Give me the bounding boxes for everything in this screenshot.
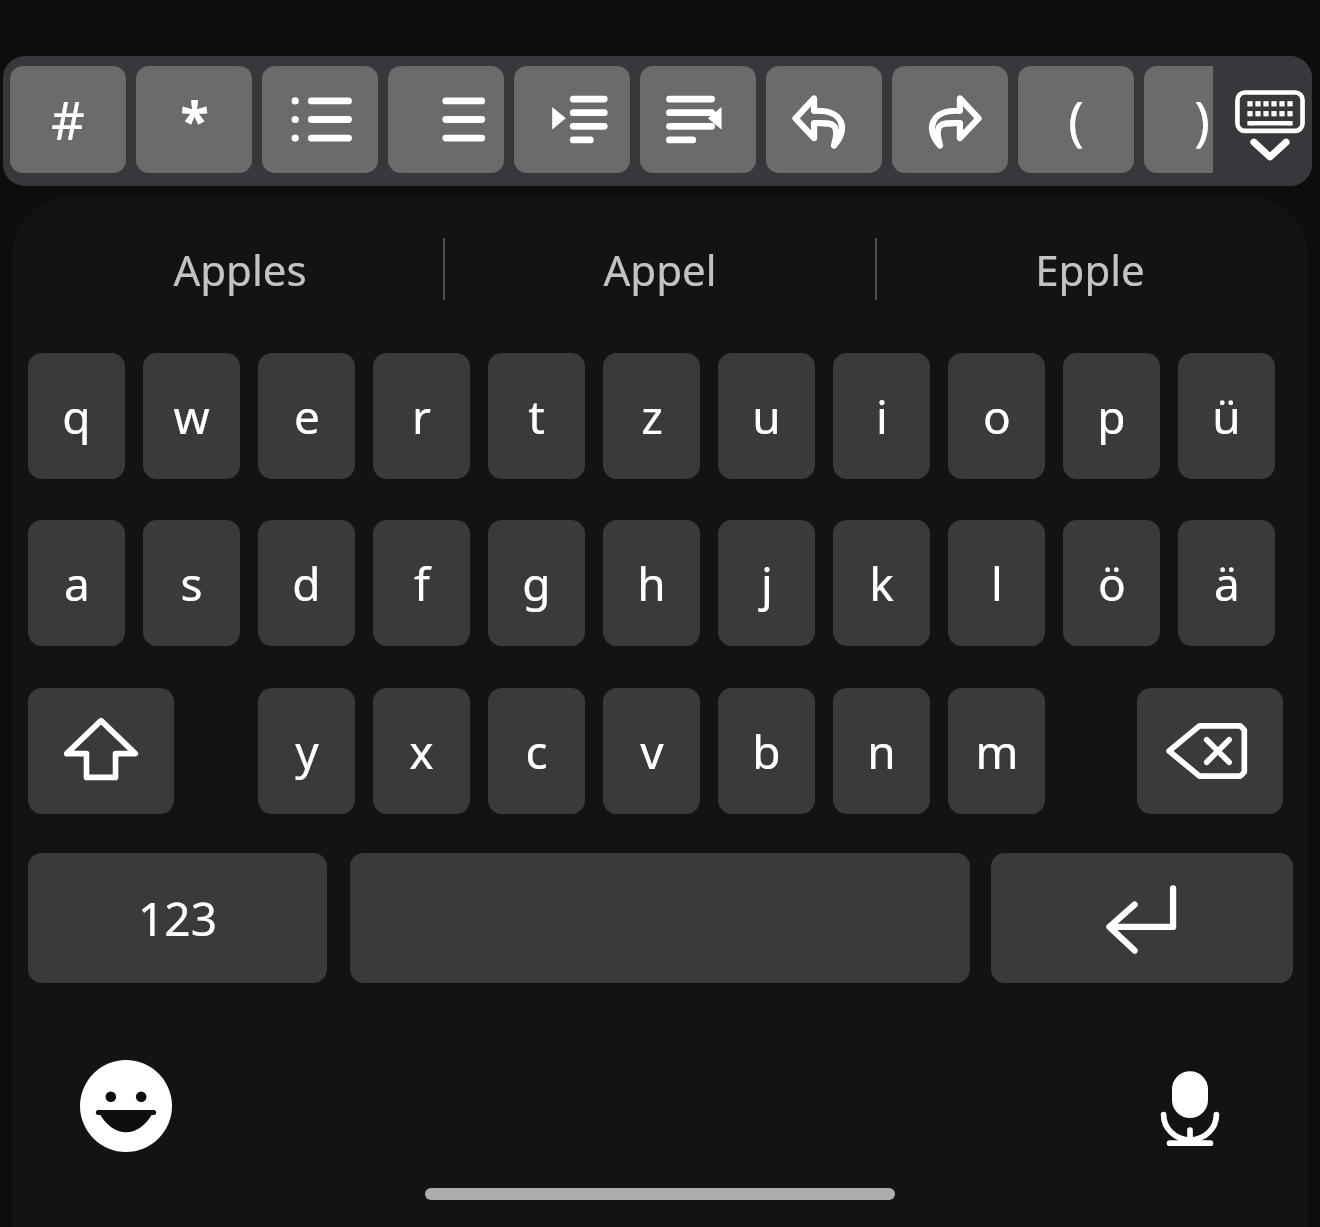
button[interactable]: Redo xyxy=(892,66,1008,173)
staticText: x xyxy=(409,720,434,783)
button[interactable]: Apples xyxy=(40,238,440,300)
staticText: v xyxy=(640,720,664,783)
button[interactable]: z xyxy=(603,353,700,479)
button[interactable]: y xyxy=(258,688,355,814)
button[interactable]: Hide keyboard xyxy=(1230,80,1310,162)
staticText: z xyxy=(641,385,663,448)
button[interactable]: # xyxy=(10,66,126,173)
button[interactable]: Bulleted list xyxy=(262,66,378,173)
button[interactable]: Increase indent xyxy=(514,66,630,173)
button[interactable]: Voice input xyxy=(1130,1046,1250,1166)
staticText: i xyxy=(876,385,888,448)
staticText: k xyxy=(869,552,894,615)
staticText: Epple xyxy=(1035,241,1145,298)
staticText: Appel xyxy=(603,241,717,298)
staticText: u xyxy=(752,385,781,448)
button[interactable]: x xyxy=(373,688,470,814)
staticText: h xyxy=(637,552,666,615)
staticText: ) xyxy=(1194,84,1210,155)
button[interactable]: m xyxy=(948,688,1045,814)
button[interactable]: p xyxy=(1063,353,1160,479)
staticText: b xyxy=(752,720,781,783)
staticText: Apples xyxy=(173,241,307,298)
button[interactable]: n xyxy=(833,688,930,814)
button[interactable]: Epple xyxy=(890,238,1290,300)
staticText: f xyxy=(414,552,430,615)
button[interactable]: g xyxy=(488,520,585,646)
button[interactable]: 123 xyxy=(28,853,327,983)
staticText: s xyxy=(180,552,203,615)
button[interactable]: Shift xyxy=(28,688,174,814)
button[interactable]: ) xyxy=(1144,66,1260,173)
staticText: ä xyxy=(1214,552,1240,615)
button[interactable]: Backspace xyxy=(1137,688,1283,814)
button[interactable]: e xyxy=(258,353,355,479)
button[interactable]: r xyxy=(373,353,470,479)
button[interactable]: s xyxy=(143,520,240,646)
staticText: m xyxy=(975,720,1019,783)
button[interactable]: Emoji xyxy=(66,1046,186,1166)
staticText: r xyxy=(412,385,431,448)
button[interactable]: i xyxy=(833,353,930,479)
staticText: w xyxy=(173,385,210,448)
button[interactable]: ( xyxy=(1018,66,1134,173)
button[interactable]: v xyxy=(603,688,700,814)
button[interactable]: b xyxy=(718,688,815,814)
staticText: n xyxy=(867,720,896,783)
button[interactable]: h xyxy=(603,520,700,646)
button[interactable]: d xyxy=(258,520,355,646)
button[interactable]: ö xyxy=(1063,520,1160,646)
staticText: y xyxy=(295,720,319,783)
staticText: a xyxy=(64,552,90,615)
button[interactable]: k xyxy=(833,520,930,646)
button[interactable]: q xyxy=(28,353,125,479)
staticText: e xyxy=(294,385,320,448)
button[interactable]: Numbered list xyxy=(388,66,504,173)
staticText: # xyxy=(51,84,85,155)
staticText: j xyxy=(761,552,773,615)
button[interactable]: Appel xyxy=(460,238,860,300)
button[interactable]: j xyxy=(718,520,815,646)
staticText: o xyxy=(983,385,1011,448)
staticText: c xyxy=(525,720,548,783)
button[interactable]: ü xyxy=(1178,353,1275,479)
staticText: p xyxy=(1097,385,1126,448)
staticText: l xyxy=(991,552,1003,615)
button[interactable]: Enter xyxy=(991,853,1293,983)
staticText: 123 xyxy=(138,887,217,950)
button[interactable]: Undo xyxy=(766,66,882,173)
staticText: ö xyxy=(1098,552,1126,615)
button[interactable]: ä xyxy=(1178,520,1275,646)
staticText: ( xyxy=(1068,84,1084,155)
button[interactable]: t xyxy=(488,353,585,479)
button[interactable]: c xyxy=(488,688,585,814)
staticText: t xyxy=(528,385,545,448)
button[interactable]: Decrease indent xyxy=(640,66,756,173)
staticText: g xyxy=(522,552,551,615)
button[interactable]: * xyxy=(136,66,252,173)
staticText: q xyxy=(62,385,91,448)
button[interactable]: f xyxy=(373,520,470,646)
staticText: d xyxy=(292,552,321,615)
button[interactable]: o xyxy=(948,353,1045,479)
button[interactable]: u xyxy=(718,353,815,479)
staticText: ü xyxy=(1212,385,1241,448)
button[interactable]: w xyxy=(143,353,240,479)
button[interactable]: l xyxy=(948,520,1045,646)
staticText: * xyxy=(180,84,209,155)
button[interactable]: a xyxy=(28,520,125,646)
